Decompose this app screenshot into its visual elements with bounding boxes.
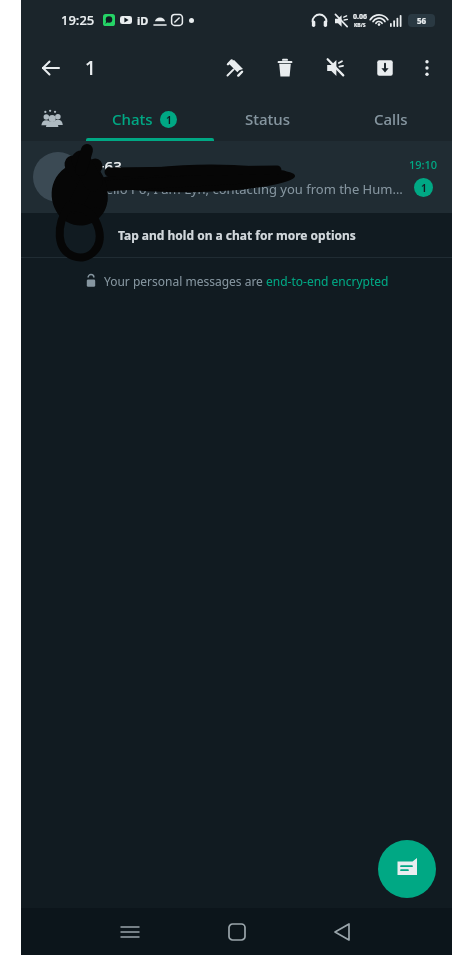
staticText: 56 <box>417 15 427 26</box>
button[interactable]: Mute notifications <box>316 49 354 87</box>
staticText: 19:25 <box>61 11 95 29</box>
staticText: Hello Po, I am Lyn, contacting you from … <box>96 180 403 198</box>
button[interactable]: Back <box>31 48 71 88</box>
staticText: iD <box>137 13 149 28</box>
staticText: Chats <box>112 109 153 129</box>
button[interactable]: More options <box>410 51 444 85</box>
button[interactable]: Pin chat <box>216 49 254 87</box>
staticText: Calls <box>374 109 408 129</box>
staticText: 1 <box>85 55 96 81</box>
button[interactable]: Status <box>206 96 329 141</box>
button[interactable]: New chat <box>378 840 436 898</box>
staticText: +63 <box>96 156 122 176</box>
staticText: 0.06 <box>353 12 367 22</box>
button[interactable]: Chats <box>83 96 206 141</box>
button[interactable]: +63 <box>21 141 452 213</box>
button[interactable]: Recent apps <box>110 912 150 952</box>
staticText: 19:10 <box>409 157 438 172</box>
staticText: 1 <box>166 113 172 127</box>
staticText: Your personal messages are <box>104 273 266 289</box>
button[interactable]: Delete chat <box>266 49 304 87</box>
staticText: 1 <box>421 181 427 195</box>
button[interactable]: Communities <box>21 96 83 141</box>
staticText: KB/S <box>354 22 366 29</box>
staticText: end-to-end encrypted <box>266 273 389 289</box>
button[interactable]: Home <box>217 912 257 952</box>
button[interactable]: Calls <box>329 96 452 141</box>
staticText: Tap and hold on a chat for more options <box>118 227 356 243</box>
button[interactable]: Archive chat <box>366 49 404 87</box>
button[interactable]: Back <box>323 912 363 952</box>
staticText: Status <box>245 109 291 129</box>
